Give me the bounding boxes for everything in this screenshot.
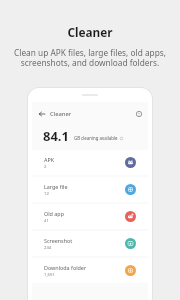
staticText: 12 (44, 191, 49, 197)
staticText: Large file (44, 183, 68, 190)
button[interactable]: Help (134, 109, 144, 119)
button[interactable]: Downloda folder (32, 258, 148, 283)
staticText: Clean up APK files, large files, old app… (14, 47, 166, 68)
button[interactable]: Screenshot (32, 231, 148, 256)
staticText: 234 (44, 245, 52, 251)
staticText: GB cleaning available (74, 135, 118, 141)
staticText: 41 (44, 218, 49, 224)
staticText: Old app (44, 210, 64, 217)
staticText: Downloda folder (44, 264, 87, 271)
button[interactable]: APK (32, 150, 148, 175)
staticText: Cleaner (50, 110, 72, 118)
staticText: Screenshot (44, 237, 73, 244)
button[interactable]: Old app (32, 204, 148, 229)
button[interactable]: Large file (32, 177, 148, 202)
staticText: 1,651 (44, 272, 55, 278)
button[interactable]: Back (37, 109, 47, 119)
staticText: 84.1 (43, 127, 69, 141)
staticText: APK (44, 156, 55, 163)
staticText: Cleaner (67, 24, 113, 40)
staticText: 2 (44, 164, 47, 170)
